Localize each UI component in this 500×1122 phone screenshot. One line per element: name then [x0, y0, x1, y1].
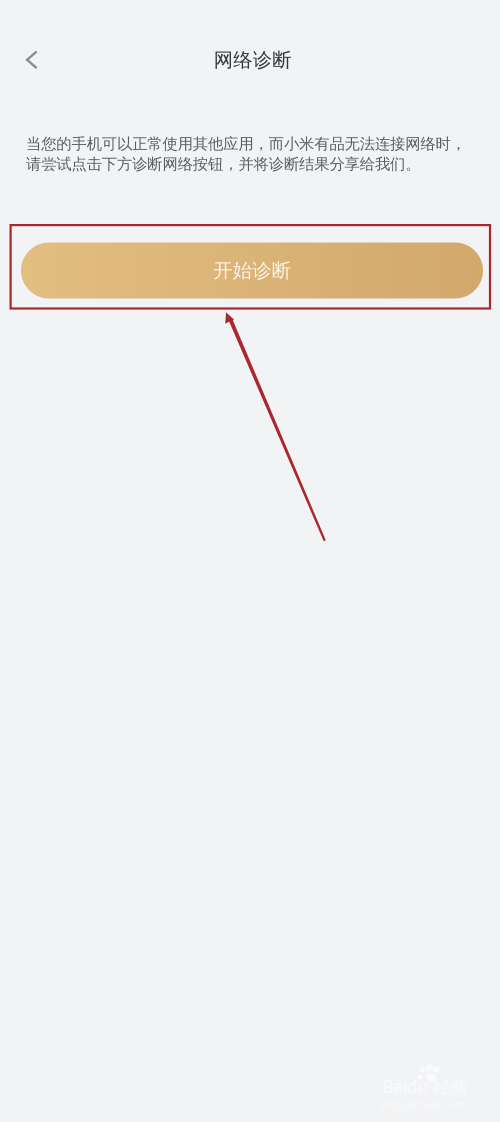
staticText: 网络诊断 — [214, 48, 291, 72]
staticText: 当您的手机可以正常使用其他应用，而小米有品无法连接网络时， — [26, 134, 466, 153]
button[interactable]: 开始诊断 — [21, 242, 483, 298]
staticText: 请尝试点击下方诊断网络按钮，并将诊断结果分享给我们。 — [26, 154, 420, 174]
button[interactable]: Back — [9, 37, 55, 83]
staticText: 开始诊断 — [213, 258, 291, 283]
